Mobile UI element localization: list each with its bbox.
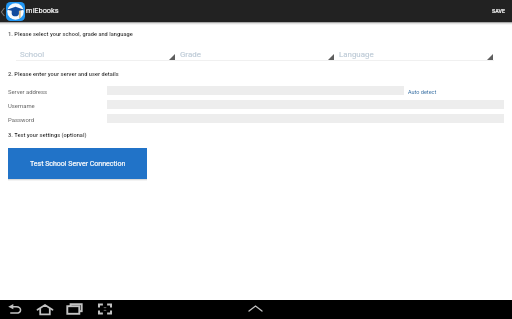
button[interactable]: SAVE (480, 3, 512, 19)
staticText: Language (339, 50, 374, 59)
staticText: Server address (8, 89, 48, 96)
staticText: 2. Please enter your server and user det… (8, 71, 119, 78)
button[interactable]: Expand notifications (249, 306, 262, 311)
staticText: 3. Test your settings (optional) (8, 132, 87, 139)
staticText: 1. Please select your school, grade and … (8, 31, 133, 38)
staticText: SAVE (492, 8, 505, 14)
staticText: Username (8, 103, 35, 110)
button[interactable]: Back (8, 305, 22, 314)
button[interactable]: Home (37, 304, 53, 315)
staticText: Auto detect (408, 89, 437, 95)
button[interactable]: Test School Server Connection (8, 148, 147, 179)
button[interactable]: School (16, 46, 176, 61)
staticText: Test School Server Connection (30, 160, 126, 168)
button[interactable]: Language (335, 46, 494, 61)
staticText: School (20, 50, 45, 59)
button[interactable]: Screenshot (98, 304, 112, 314)
button[interactable]: Recent apps (67, 304, 82, 314)
staticText: Password (8, 117, 35, 124)
button[interactable]: Grade (176, 46, 335, 61)
button[interactable]: Navigate up (0, 1, 25, 21)
staticText: miEbooks (26, 6, 59, 15)
staticText: Grade (180, 50, 201, 59)
button[interactable]: Auto detect (404, 87, 441, 97)
